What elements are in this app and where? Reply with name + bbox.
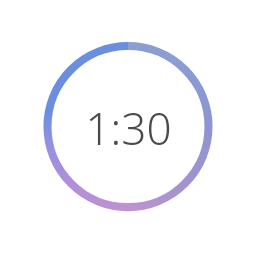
button[interactable]: 1:30 [85, 98, 172, 158]
other: Timer progress ring [0, 0, 256, 256]
button[interactable]: Timer progress ring [0, 0, 256, 256]
